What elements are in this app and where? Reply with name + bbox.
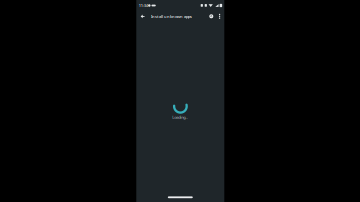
staticText: Loading… [172,115,188,120]
staticText: Install unknown apps [151,14,192,19]
button[interactable]: Navigate up [173,94,186,107]
button[interactable]: Help [174,94,185,107]
staticText: 11:34 [139,3,148,8]
